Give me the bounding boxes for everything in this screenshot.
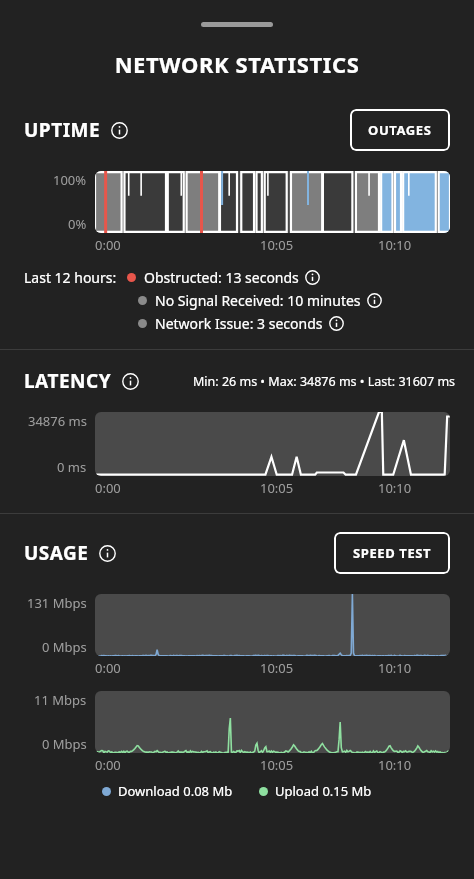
staticText: Download 0.08 Mb: [118, 782, 233, 800]
staticText: No Signal Received: 10 minutes: [155, 291, 361, 310]
button[interactable]: Info: [329, 316, 344, 331]
staticText: 10:05: [260, 479, 294, 497]
staticText: 0 ms: [57, 458, 87, 476]
staticText: SPEED TEST: [353, 544, 432, 562]
staticText: UPTIME: [24, 117, 101, 143]
staticText: 34876 ms: [28, 412, 87, 430]
button[interactable]: [95, 594, 450, 656]
staticText: 0:00: [95, 236, 121, 254]
button[interactable]: Info: [367, 293, 382, 308]
staticText: Last 12 hours:: [24, 268, 117, 287]
staticText: 0:00: [95, 756, 121, 774]
staticText: 10:05: [260, 756, 294, 774]
button[interactable]: Info: [111, 122, 128, 139]
staticText: 10:05: [260, 236, 294, 254]
staticText: 0:00: [95, 479, 121, 497]
staticText: 11 Mbps: [34, 691, 87, 709]
staticText: 0 Mbps: [42, 735, 87, 753]
button[interactable]: [95, 691, 450, 753]
staticText: Obstructed: 13 seconds: [144, 268, 299, 287]
staticText: LATENCY: [24, 368, 112, 394]
staticText: USAGE: [24, 540, 89, 566]
staticText: 0%: [68, 215, 87, 233]
staticText: 10:05: [260, 659, 294, 677]
staticText: NETWORK STATISTICS: [0, 49, 474, 79]
staticText: Network Issue: 3 seconds: [155, 314, 323, 333]
staticText: 10:10: [378, 756, 412, 774]
button[interactable]: [95, 171, 450, 233]
staticText: Min: 26 ms • Max: 34876 ms • Last: 31607…: [193, 373, 456, 390]
staticText: 0:00: [95, 659, 121, 677]
button[interactable]: Info: [99, 545, 116, 562]
button[interactable]: Info: [122, 373, 139, 390]
button[interactable]: SPEED TEST: [334, 532, 450, 574]
staticText: 0 Mbps: [42, 638, 87, 656]
staticText: 131 Mbps: [27, 594, 87, 612]
staticText: OUTAGES: [368, 121, 432, 139]
staticText: 10:10: [378, 479, 412, 497]
staticText: 10:10: [378, 236, 412, 254]
button[interactable]: OUTAGES: [350, 109, 450, 151]
button[interactable]: [95, 412, 450, 476]
button[interactable]: Info: [305, 270, 320, 285]
staticText: 100%: [53, 171, 87, 189]
staticText: Upload 0.15 Mb: [275, 782, 372, 800]
staticText: 10:10: [378, 659, 412, 677]
